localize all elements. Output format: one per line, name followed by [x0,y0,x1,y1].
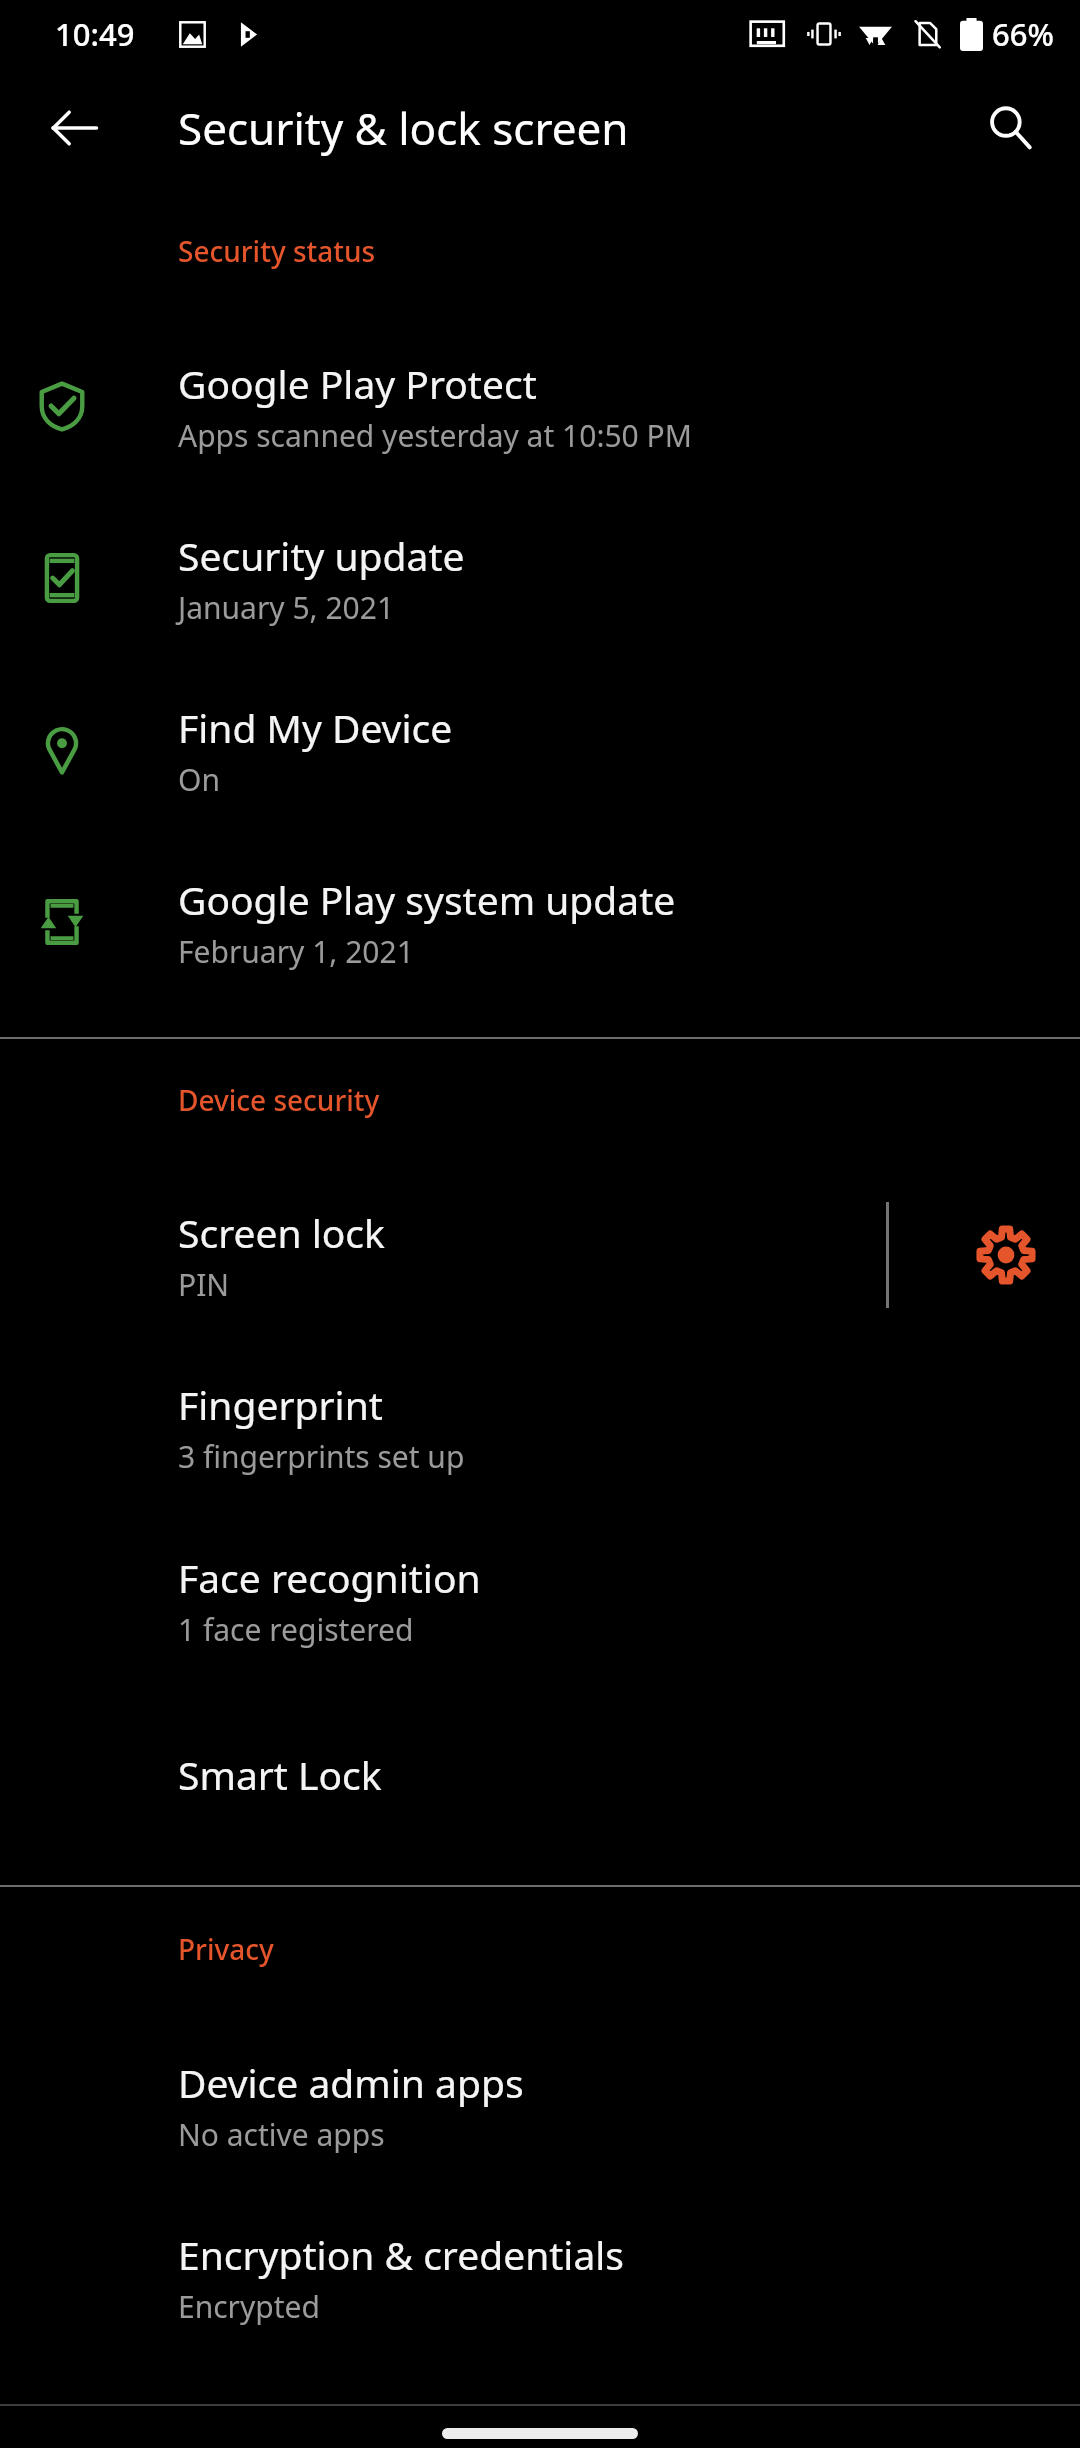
button[interactable]: Security update [0,492,1080,664]
staticText: Screen lock [178,1206,385,1259]
staticText: 3 fingerprints set up [178,1436,465,1477]
button[interactable]: Encryption & credentials [0,2191,1080,2363]
staticText: Smart Lock [178,1748,382,1801]
button[interactable]: Smart Lock [0,1688,1080,1860]
staticText: Encrypted [178,2286,320,2327]
staticText: Google Play Protect [178,357,537,410]
staticText: On [178,759,220,800]
staticText: 66% [992,13,1054,55]
staticText: Privacy [178,1930,274,1968]
button[interactable]: Google Play system update [0,836,1080,1008]
staticText: Security update [178,529,465,582]
staticText: Fingerprint [178,1378,383,1431]
button[interactable]: Find My Device [0,664,1080,836]
button[interactable]: Fingerprint [0,1341,1080,1513]
staticText: Find My Device [178,701,453,754]
staticText: 10:49 [55,13,135,55]
staticText: Face recognition [178,1551,481,1604]
staticText: Device security [178,1081,380,1119]
staticText: Security & lock screen [178,98,629,158]
staticText: January 5, 2021 [178,587,395,628]
staticText: Encryption & credentials [178,2228,625,2281]
button[interactable]: Face recognition [0,1514,1080,1686]
staticText: No active apps [178,2114,385,2155]
staticText: Security status [178,232,376,270]
button[interactable]: Search [962,80,1058,176]
staticText: February 1, 2021 [178,931,414,972]
button[interactable]: Back [26,80,122,176]
staticText: PIN [178,1264,230,1305]
staticText: Apps scanned yesterday at 10:50 PM [178,415,692,456]
button[interactable]: Device admin apps [0,2019,1080,2191]
staticText: Google Play system update [178,873,676,926]
button[interactable]: Google Play Protect [0,320,1080,492]
button[interactable]: Screen lock settings [932,1169,1080,1341]
staticText: 1 face registered [178,1609,414,1650]
button[interactable]: Screen lock [0,1169,880,1341]
staticText: Device admin apps [178,2056,524,2109]
